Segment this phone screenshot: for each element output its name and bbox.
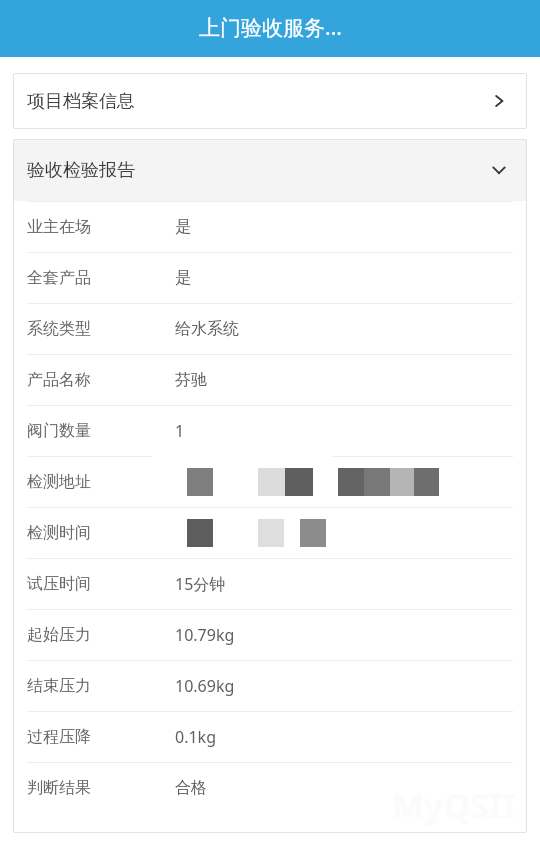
- button[interactable]: 试压时间: [13, 559, 527, 609]
- staticText: 上门验收服务...: [199, 13, 342, 42]
- staticText: 过程压降: [27, 727, 91, 747]
- staticText: 是: [175, 268, 191, 288]
- staticText: 产品名称: [27, 370, 91, 390]
- staticText: 试压时间: [27, 574, 91, 594]
- button[interactable]: 验收检验报告: [13, 139, 527, 201]
- button[interactable]: 阀门数量: [13, 406, 527, 456]
- staticText: 起始压力: [27, 625, 91, 645]
- staticText: 15分钟: [175, 573, 226, 595]
- staticText: 给水系统: [175, 319, 239, 339]
- staticText: 10.79kg: [175, 624, 235, 646]
- button[interactable]: 项目档案信息: [13, 73, 527, 129]
- staticText: 是: [175, 217, 191, 237]
- staticText: 合格: [175, 778, 207, 798]
- button[interactable]: 起始压力: [13, 610, 527, 660]
- button[interactable]: 检测时间: [13, 508, 527, 558]
- staticText: 系统类型: [27, 319, 91, 339]
- staticText: 验收检验报告: [27, 159, 135, 182]
- button[interactable]: 产品名称: [13, 355, 527, 405]
- other: 展开 项目档案信息: [487, 89, 511, 113]
- staticText: 芬驰: [175, 370, 207, 390]
- staticText: 业主在场: [27, 217, 91, 237]
- other: 收起 验收检验报告: [487, 158, 511, 182]
- staticText: 检测地址: [27, 472, 91, 492]
- button[interactable]: 全套产品: [13, 253, 527, 303]
- staticText: 10.69kg: [175, 675, 235, 697]
- staticText: 0.1kg: [175, 726, 216, 748]
- staticText: 判断结果: [27, 778, 91, 798]
- staticText: 项目档案信息: [27, 90, 135, 113]
- button[interactable]: 过程压降: [13, 712, 527, 762]
- button[interactable]: 系统类型: [13, 304, 527, 354]
- button[interactable]: 判断结果: [13, 763, 527, 813]
- staticText: 1: [175, 420, 185, 442]
- staticText: 检测时间: [27, 523, 91, 543]
- button[interactable]: 检测地址: [13, 457, 527, 507]
- staticText: 全套产品: [27, 268, 91, 288]
- button[interactable]: 业主在场: [13, 202, 527, 252]
- staticText: 结束压力: [27, 676, 91, 696]
- button[interactable]: 结束压力: [13, 661, 527, 711]
- staticText: 阀门数量: [27, 421, 91, 441]
